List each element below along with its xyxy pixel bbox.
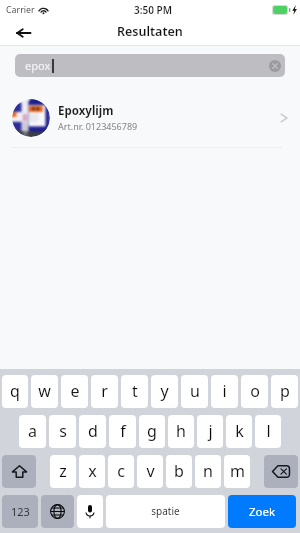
button[interactable]: h [168,415,194,448]
button[interactable]: spatie [106,495,225,528]
button[interactable]: o [241,375,268,408]
button[interactable]: c [108,455,134,488]
button[interactable]: w [31,375,58,408]
staticText: epox [25,58,51,73]
button[interactable]: Change keyboard language [41,495,74,528]
staticText: d [88,420,98,442]
staticText: q [10,380,20,402]
staticText: i [222,380,227,402]
staticText: 3:50 PM [134,3,172,17]
staticText: r [101,380,108,402]
button[interactable]: d [79,415,106,448]
button[interactable]: t [121,375,148,408]
button[interactable]: k [226,415,252,448]
button[interactable]: n [195,455,221,488]
button[interactable]: r [91,375,118,408]
staticText: p [280,380,290,402]
button[interactable]: j [197,415,223,448]
staticText: y [160,380,169,402]
staticText: a [28,420,37,442]
staticText: e [70,380,80,402]
staticText: w [38,380,51,402]
staticText: t [132,380,138,402]
button[interactable]: Zoek [228,495,296,528]
button[interactable]: z [50,455,76,488]
staticText: Epoxylijm [58,103,114,119]
staticText: x [88,460,97,482]
button[interactable]: f [109,415,136,448]
button[interactable]: y [151,375,178,408]
button[interactable]: Dictation [77,495,103,528]
button[interactable]: u [181,375,208,408]
staticText: Art.nr. 0123456789 [58,120,138,132]
staticText: Zoek [249,504,276,520]
button[interactable]: v [137,455,163,488]
staticText: j [208,420,213,442]
staticText: Carrier [6,4,35,16]
staticText: b [174,460,184,482]
button[interactable]: 123 [2,495,38,528]
button[interactable]: g [139,415,165,448]
button[interactable]: Backspace [264,455,298,488]
staticText: s [59,420,67,442]
staticText: v [146,460,155,482]
staticText: g [147,420,157,442]
button[interactable]: Back [11,21,35,45]
button[interactable]: a [19,415,46,448]
button[interactable]: m [224,455,250,488]
staticText: o [250,380,260,402]
staticText: n [203,460,213,482]
staticText: m [230,460,245,482]
button[interactable]: epox [15,54,285,77]
staticText: f [120,420,126,442]
staticText: l [266,420,271,442]
staticText: k [235,420,244,442]
button[interactable]: l [255,415,281,448]
staticText: c [117,460,125,482]
button[interactable]: i [211,375,238,408]
staticText: spatie [151,504,180,518]
button[interactable]: x [79,455,105,488]
staticText: u [190,380,200,402]
staticText: z [59,460,67,482]
button[interactable]: b [166,455,192,488]
button[interactable]: Epoxylijm [0,80,300,147]
staticText: Resultaten [117,23,183,40]
staticText: h [176,420,186,442]
staticText: 123 [11,504,30,519]
button[interactable]: e [61,375,88,408]
button[interactable]: q [2,375,28,408]
button[interactable]: Shift [2,455,36,488]
button[interactable]: p [271,375,298,408]
button[interactable]: s [49,415,76,448]
